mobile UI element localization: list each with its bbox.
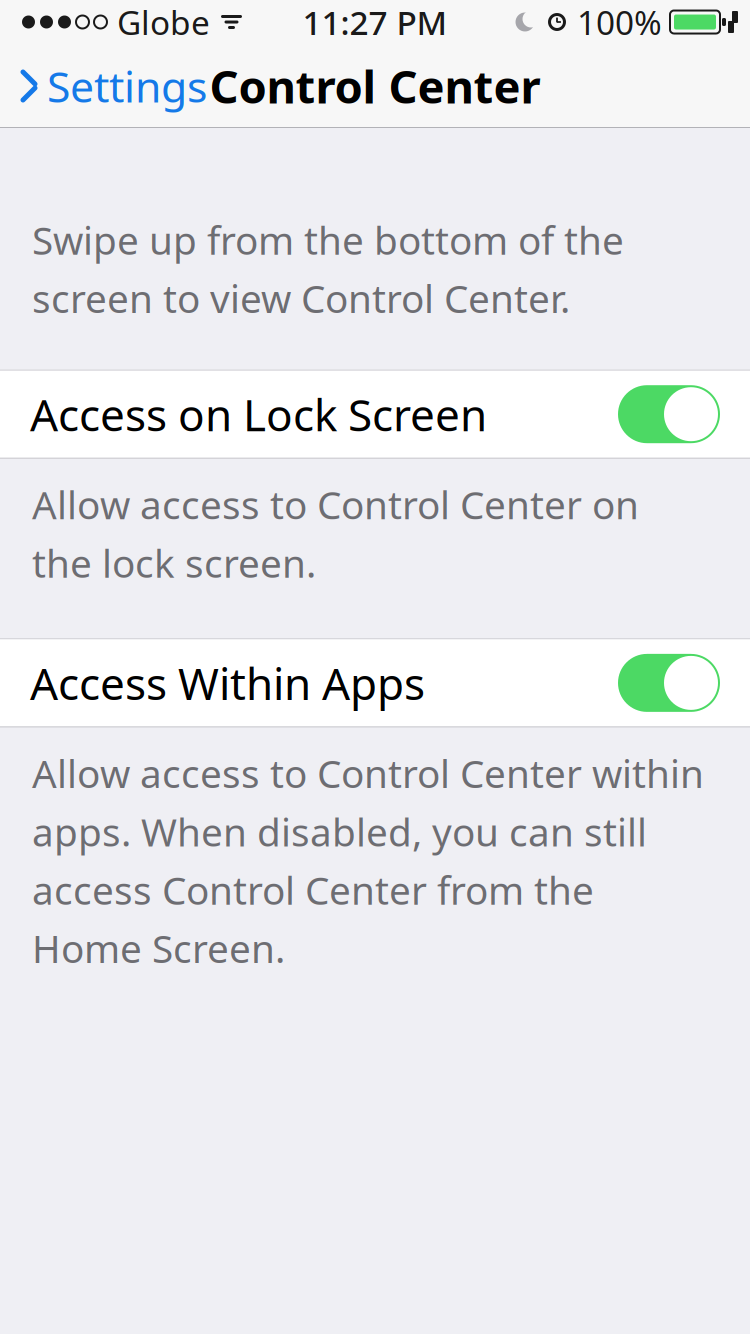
staticText: Settings bbox=[47, 58, 207, 114]
staticText: 11:27 PM bbox=[302, 0, 447, 44]
staticText: Allow access to Control Center on the lo… bbox=[32, 479, 639, 588]
staticText: Globe bbox=[117, 0, 210, 44]
button[interactable]: Access on Lock Screen bbox=[0, 371, 750, 458]
staticText: Allow access to Control Center within ap… bbox=[32, 747, 704, 974]
staticText: Access on Lock Screen bbox=[30, 385, 487, 443]
staticText: Access Within Apps bbox=[30, 654, 425, 712]
button[interactable]: Access Within Apps bbox=[0, 639, 750, 726]
staticText: Control Center bbox=[209, 56, 540, 116]
button[interactable]: Settings bbox=[0, 50, 207, 122]
staticText: Swipe up from the bottom of the screen t… bbox=[32, 214, 624, 324]
staticText: 100% bbox=[577, 0, 662, 44]
